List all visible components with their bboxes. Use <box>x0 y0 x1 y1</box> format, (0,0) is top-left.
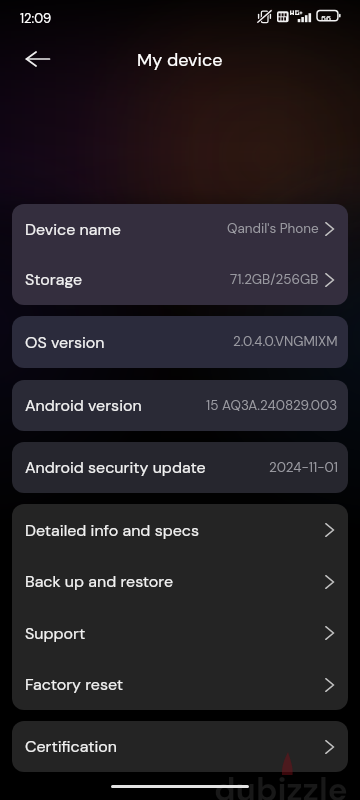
staticText: OS version <box>25 332 105 353</box>
staticText: Device name <box>25 219 121 240</box>
button[interactable]: Factory reset <box>12 659 348 710</box>
staticText: Back up and restore <box>25 571 174 592</box>
staticText: Qandil's Phone <box>227 220 319 238</box>
staticText: Certification <box>25 736 118 757</box>
button[interactable]: Android version <box>12 380 348 431</box>
staticText: Detailed info and specs <box>25 520 199 541</box>
staticText: 71.2GB/256GB <box>230 271 319 289</box>
button[interactable]: Support <box>12 607 348 659</box>
staticText: 56 <box>321 13 331 23</box>
button[interactable]: Android security update <box>12 442 348 493</box>
button[interactable]: Detailed info and specs <box>12 504 348 556</box>
button[interactable]: Back <box>22 43 54 75</box>
button[interactable]: Device name <box>12 204 348 254</box>
staticText: Factory reset <box>25 674 124 695</box>
button[interactable]: Back up and restore <box>12 556 348 607</box>
staticText: 15 AQ3A.240829.003 <box>206 397 338 415</box>
staticText: 2.0.4.0.VNGMIXM <box>233 333 338 351</box>
staticText: Storage <box>25 269 83 290</box>
staticText: 2024-11-01 <box>269 459 338 477</box>
staticText: dubizzle <box>214 768 348 800</box>
staticText: Android version <box>25 395 142 416</box>
button[interactable]: OS version <box>12 316 348 368</box>
staticText: 12:09 <box>20 10 52 27</box>
button[interactable]: Certification <box>12 721 348 772</box>
button[interactable]: Storage <box>12 254 348 305</box>
staticText: Support <box>25 623 86 644</box>
staticText: Android security update <box>25 457 206 478</box>
staticText: My device <box>137 48 223 71</box>
